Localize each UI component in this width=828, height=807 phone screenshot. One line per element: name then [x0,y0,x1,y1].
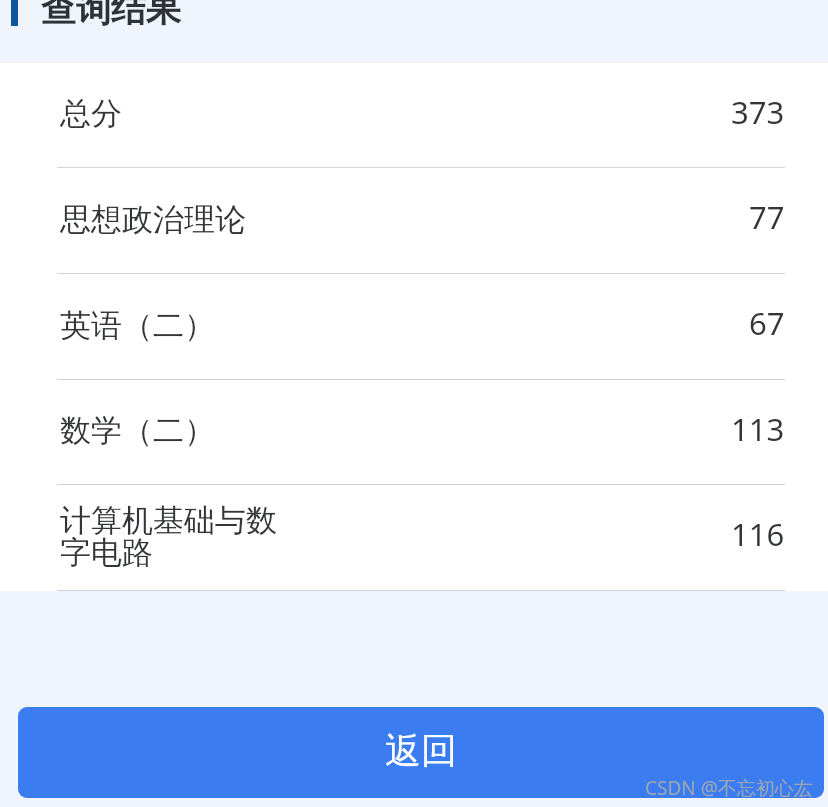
staticText: 总分 [60,94,122,133]
staticText: 返回 [385,728,457,773]
button[interactable]: 思想政治理论 [0,168,828,274]
button[interactable]: 数学（二） [0,380,828,485]
staticText: CSDN @不忘初心厷 [645,775,813,801]
staticText: 计算机基础与数 字电路 [60,501,277,572]
button[interactable]: 计算机基础与数 字电路 [0,485,828,591]
staticText: 67 [749,302,785,344]
button[interactable]: 返回 [18,707,824,798]
staticText: 查询结果 [41,0,181,31]
staticText: 116 [731,513,785,555]
staticText: 373 [731,91,785,133]
staticText: 英语（二） [60,306,215,345]
staticText: 思想政治理论 [60,200,246,239]
staticText: 77 [749,196,785,238]
button[interactable]: 英语（二） [0,274,828,380]
staticText: 数学（二） [60,411,215,450]
button[interactable]: 总分 [0,63,828,168]
staticText: 113 [731,408,785,450]
